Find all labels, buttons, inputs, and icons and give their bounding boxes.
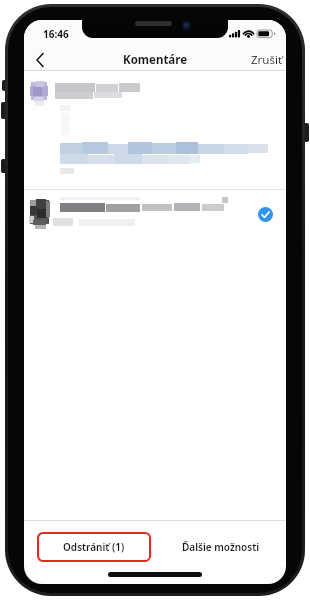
button[interactable]: Zrušiť (24, 50, 283, 70)
button[interactable] (24, 190, 286, 253)
staticText: Odstrániť (1) (63, 540, 125, 554)
button[interactable]: Ďalšie možnosti (155, 526, 286, 568)
staticText: Zrušiť (251, 52, 283, 68)
button[interactable] (32, 50, 50, 70)
button[interactable]: Odstrániť (1) (33, 526, 155, 568)
staticText: Ďalšie možnosti (182, 540, 260, 554)
button[interactable] (24, 71, 286, 189)
staticText: 16:46 (43, 27, 69, 41)
staticText: Komentáre (123, 52, 188, 68)
